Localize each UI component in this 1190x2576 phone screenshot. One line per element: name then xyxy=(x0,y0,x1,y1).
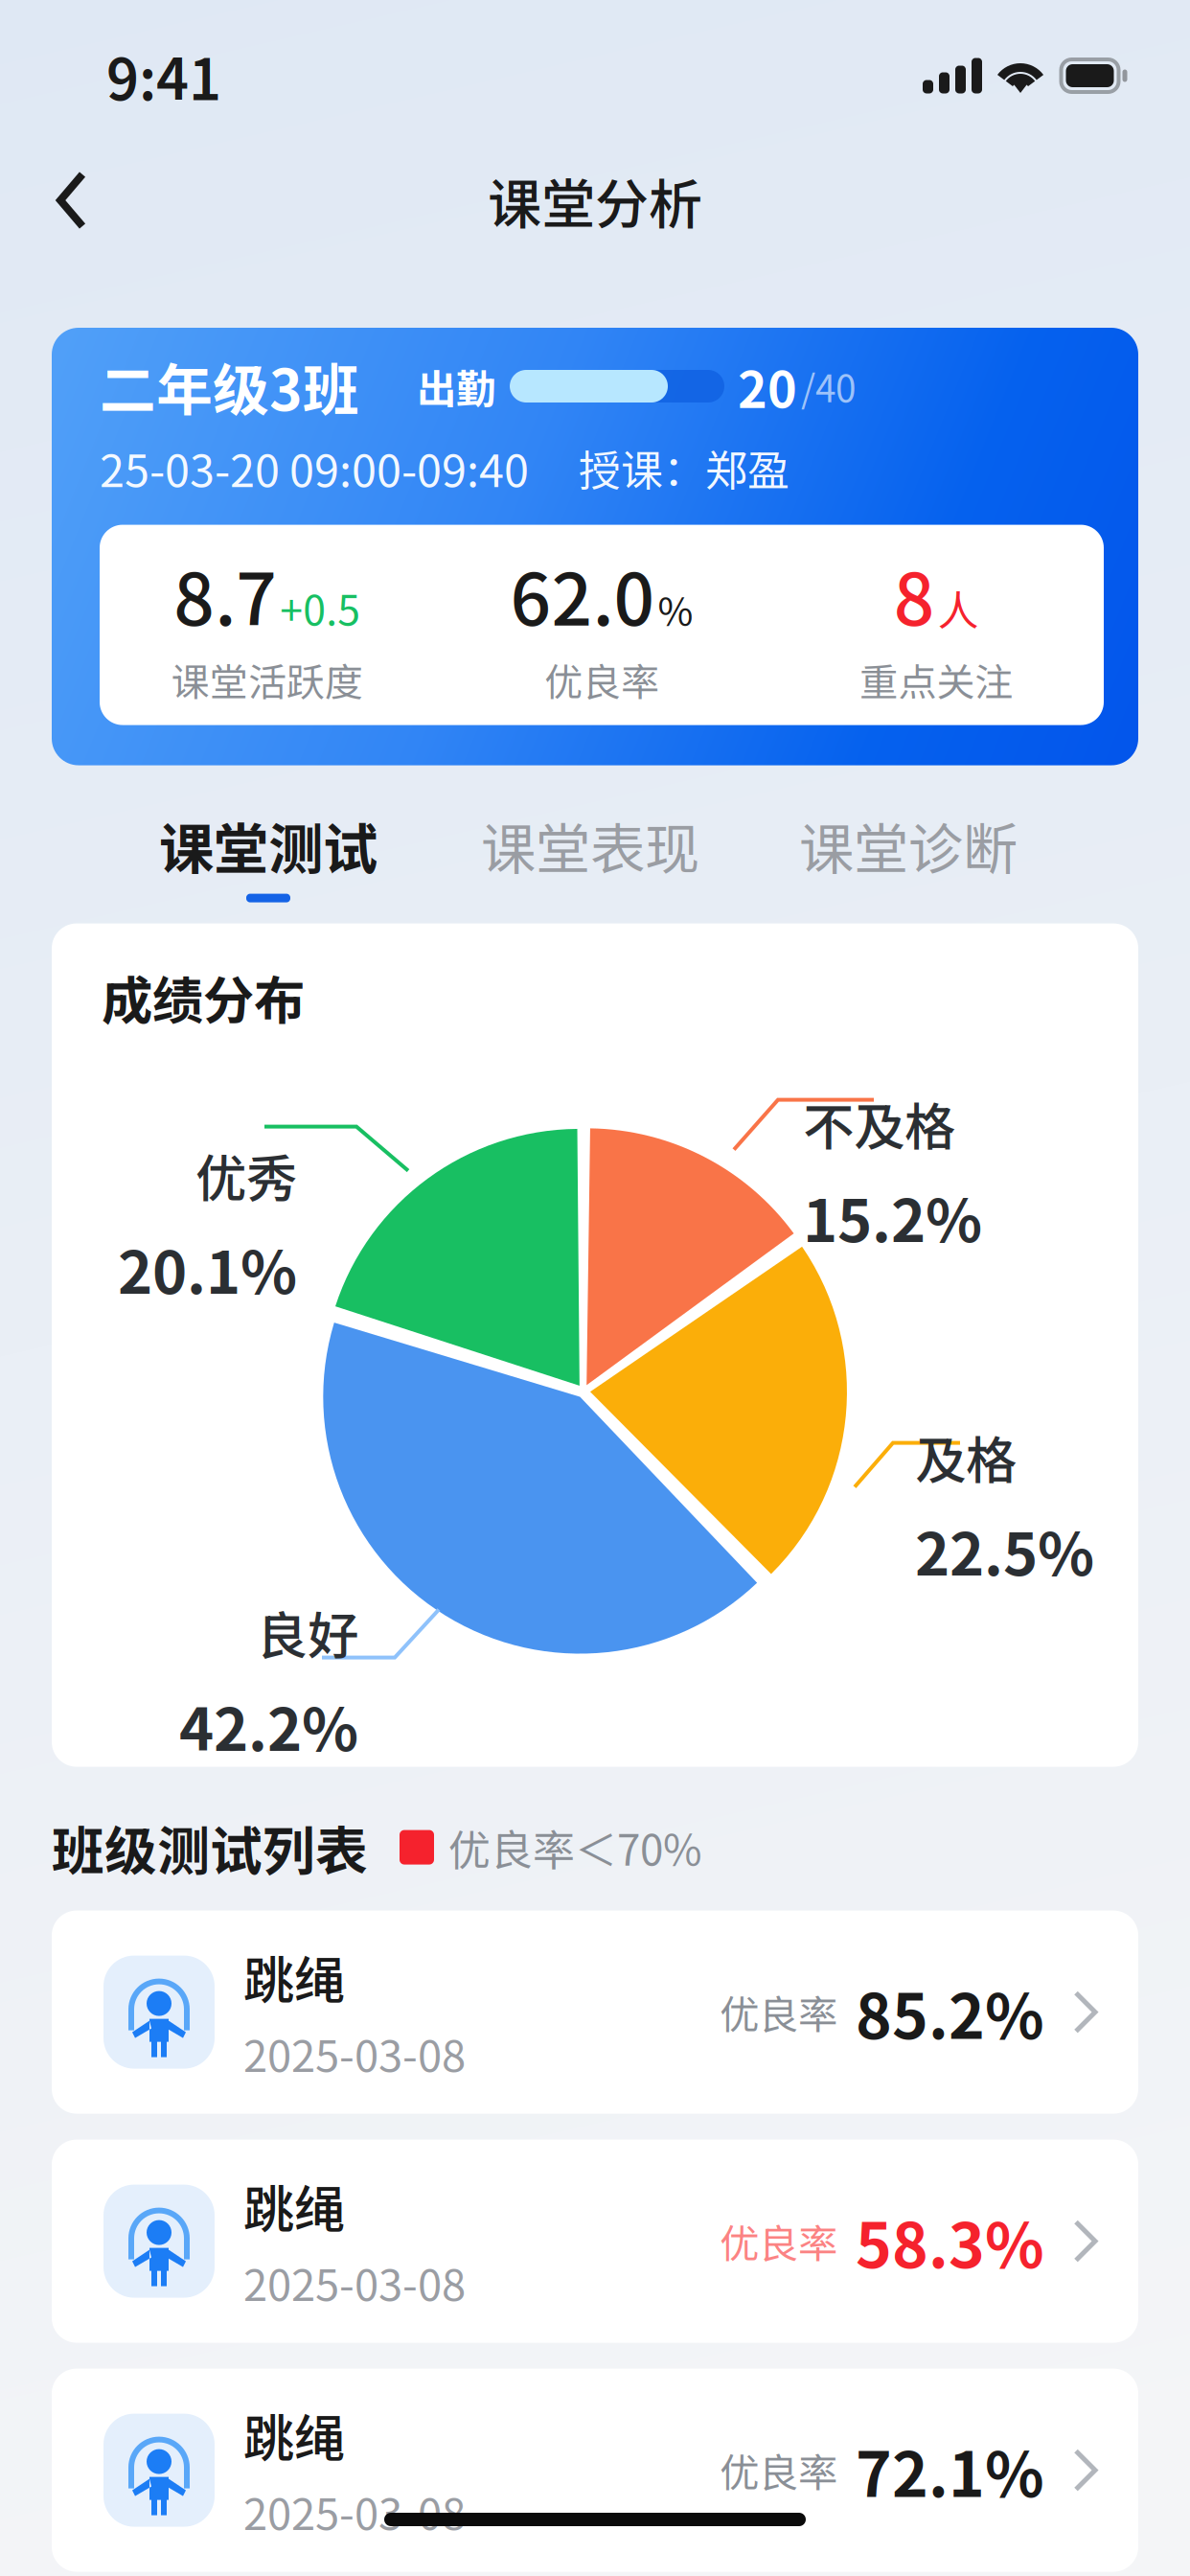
staticText: 优良率 xyxy=(720,1983,837,2041)
staticText: 72.1% xyxy=(856,2426,1044,2515)
staticText: 58.3% xyxy=(856,2197,1044,2286)
staticText: 20 xyxy=(738,350,797,422)
staticText: /40 xyxy=(801,359,856,413)
staticText: 跳绳 xyxy=(243,2398,345,2472)
staticText: 优良率 xyxy=(544,652,659,707)
staticText: 不及格 xyxy=(803,1086,955,1160)
staticText: 20.1% xyxy=(118,1226,297,1311)
staticText: 2025-03-08 xyxy=(243,2022,466,2084)
staticText: 25-03-20 09:00-09:40 xyxy=(100,435,529,500)
staticText: 8.7 xyxy=(174,543,277,646)
staticText: 跳绳 xyxy=(243,1940,345,2014)
staticText: 二年级3班 xyxy=(100,345,359,427)
staticText: 优秀 xyxy=(195,1138,297,1212)
button[interactable]: 课堂表现 xyxy=(481,806,699,902)
button[interactable]: Back xyxy=(31,146,113,255)
staticText: 62.0 xyxy=(510,543,655,646)
staticText: 良好 xyxy=(257,1595,358,1669)
button[interactable]: 课堂诊断 xyxy=(799,806,1018,902)
staticText: 课堂表现 xyxy=(481,806,699,885)
staticText: 42.2% xyxy=(179,1683,358,1768)
staticText: 22.5% xyxy=(915,1507,1094,1592)
staticText: 2025-03-08 xyxy=(243,2251,466,2313)
button[interactable]: 跳绳 xyxy=(52,2369,1138,2572)
staticText: 课堂测试 xyxy=(159,806,378,885)
staticText: 85.2% xyxy=(856,1968,1044,2057)
staticText: 课堂活跃度 xyxy=(171,652,363,707)
staticText: 授课：郑盈 xyxy=(579,437,790,498)
staticText: 课堂诊断 xyxy=(799,806,1018,885)
button[interactable]: 跳绳 xyxy=(52,2140,1138,2343)
staticText: 课堂分析 xyxy=(488,161,702,239)
staticText: 人 xyxy=(938,578,979,637)
staticText: 9:41 xyxy=(106,35,221,116)
staticText: 15.2% xyxy=(803,1174,982,1259)
staticText: 重点关注 xyxy=(860,652,1013,707)
staticText: 优良率＜70% xyxy=(448,1817,702,1878)
button[interactable]: 跳绳 xyxy=(52,1911,1138,2114)
staticText: 8 xyxy=(894,543,935,646)
staticText: 2025-03-08 xyxy=(243,2480,466,2542)
staticText: % xyxy=(658,581,693,637)
staticText: 出勤 xyxy=(417,358,495,415)
staticText: +0.5 xyxy=(280,578,360,637)
staticText: 优良率 xyxy=(720,2442,837,2499)
button[interactable]: 课堂测试 xyxy=(159,806,378,902)
staticText: 跳绳 xyxy=(243,2169,345,2243)
staticText: 班级测试列表 xyxy=(52,1809,368,1885)
staticText: 优良率 xyxy=(720,2213,837,2270)
staticText: 及格 xyxy=(915,1420,1017,1494)
staticText: 成绩分布 xyxy=(102,960,305,1034)
